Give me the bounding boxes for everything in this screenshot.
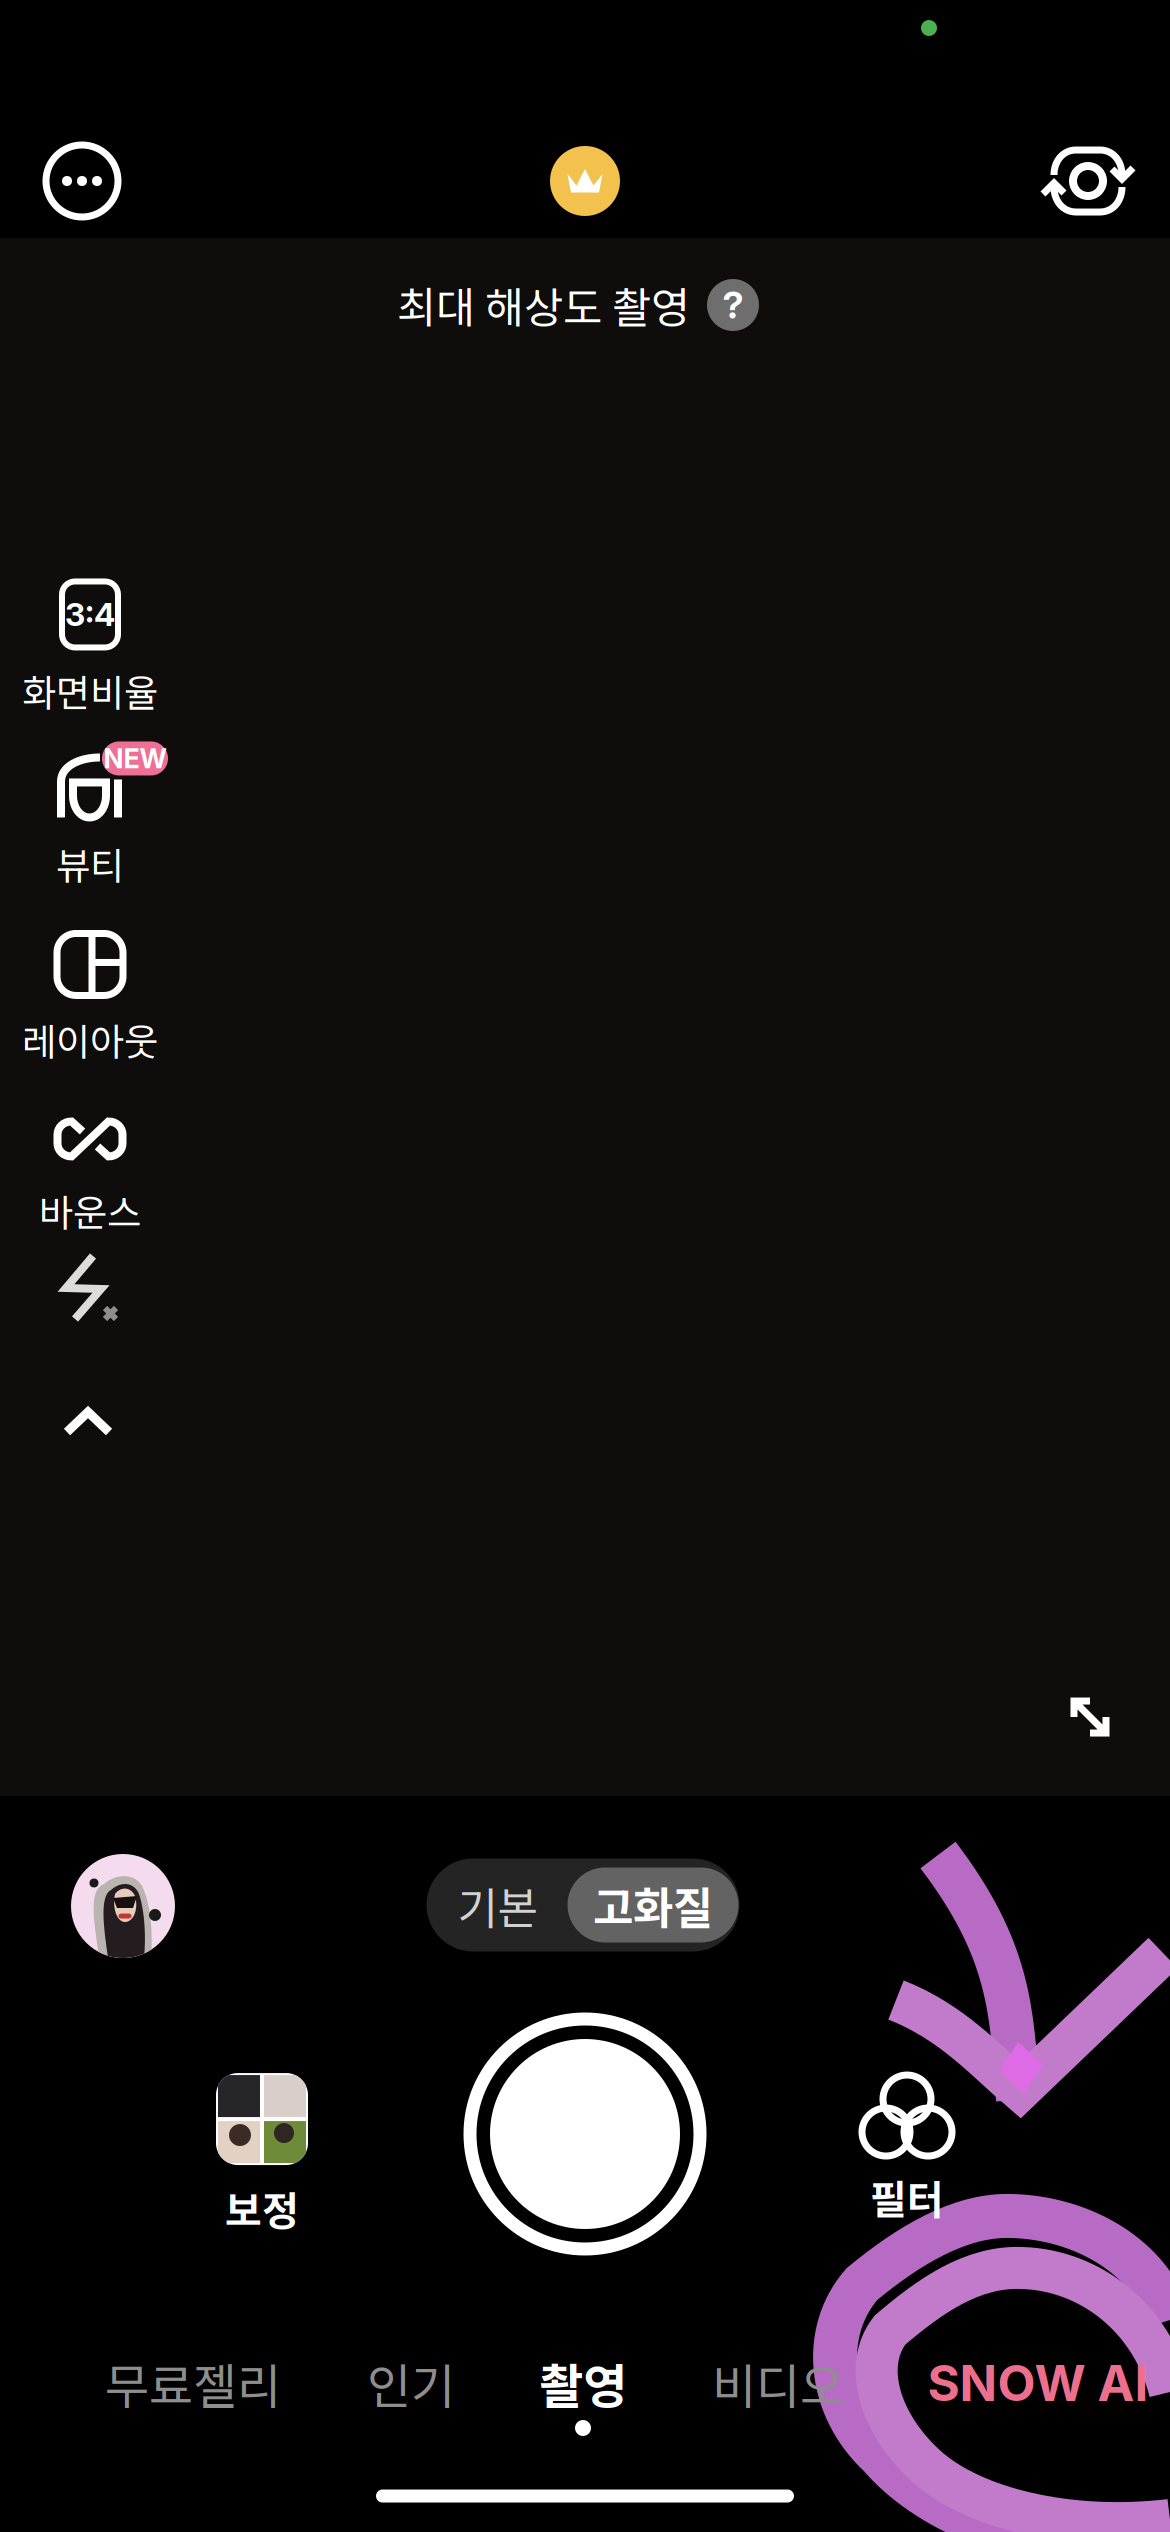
staticText: 무료젤리 (105, 2348, 281, 2418)
button[interactable]: 3:4 (22, 578, 158, 718)
button[interactable]: 촬영 (518, 2335, 648, 2431)
button[interactable]: 기본 (427, 1858, 567, 1951)
staticText: 필터 (870, 2168, 944, 2226)
button[interactable]: More options (62, 1406, 114, 1438)
button[interactable]: SNOW AI (923, 2335, 1153, 2431)
staticText: 최대 해상도 촬영 (397, 274, 690, 336)
staticText: NEW (103, 742, 166, 775)
button[interactable]: 인기 (346, 2335, 476, 2431)
button[interactable]: 최대 해상도 촬영 (397, 274, 759, 336)
staticText: 보정 (225, 2179, 299, 2237)
button[interactable]: 필터 (861, 2074, 953, 2226)
button[interactable]: 비디오 (698, 2335, 858, 2431)
button[interactable] (1046, 141, 1130, 221)
staticText: 비디오 (712, 2348, 844, 2418)
button[interactable]: 바운스 (39, 1116, 141, 1238)
staticText: 기본 (457, 1873, 537, 1937)
staticText: 고화질 (593, 1873, 713, 1937)
staticText: 촬영 (539, 2348, 627, 2418)
button[interactable] (550, 146, 620, 216)
button[interactable]: 무료젤리 (93, 2335, 293, 2431)
staticText: 3:4 (65, 595, 115, 634)
button[interactable]: Expand (1067, 1694, 1113, 1740)
button[interactable]: Shutter (465, 2014, 705, 2254)
button[interactable]: 레이아웃 (22, 933, 158, 1067)
staticText: 레이아웃 (22, 1012, 158, 1067)
staticText: SNOW AI (927, 2353, 1148, 2413)
button[interactable]: NEW (56, 753, 124, 891)
staticText: 화면비율 (22, 663, 158, 718)
staticText: ? (722, 282, 743, 328)
button[interactable]: Flash off (60, 1251, 116, 1323)
staticText: 인기 (367, 2348, 455, 2418)
button[interactable]: 보정 (216, 2073, 308, 2237)
button[interactable]: Profile (71, 1854, 175, 1958)
button[interactable]: 고화질 (567, 1858, 738, 1951)
staticText: 바운스 (39, 1183, 141, 1238)
staticText: 뷰티 (56, 836, 124, 891)
button[interactable] (43, 142, 121, 220)
